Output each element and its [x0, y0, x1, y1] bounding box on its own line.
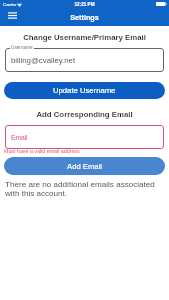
staticText: billing@cvalley.net — [11, 56, 76, 65]
staticText: Username — [11, 45, 33, 50]
staticText: Settings — [0, 13, 169, 21]
staticText: Add Email — [67, 162, 103, 171]
button[interactable]: Add Email — [4, 157, 165, 175]
staticText: Add Corresponding Email — [0, 110, 169, 119]
staticText: Must have a valid email address — [4, 148, 80, 154]
button[interactable]: Open navigation menu — [4, 10, 21, 21]
staticText: Change Username/Primary Email — [0, 33, 169, 42]
staticText: 12:21 PM — [0, 2, 169, 7]
staticText: Carrier — [3, 2, 17, 7]
staticText: Email — [11, 134, 28, 141]
staticText: There are no additional emails associate… — [5, 180, 160, 197]
staticText: Update Username — [53, 86, 116, 95]
button[interactable]: Update Username — [4, 82, 165, 99]
button[interactable]: billing@cvalley.net — [5, 48, 164, 72]
button[interactable]: Email — [5, 125, 164, 149]
